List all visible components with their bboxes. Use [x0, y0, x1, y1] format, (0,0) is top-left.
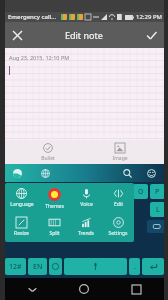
button[interactable]: Split — [38, 217, 70, 237]
button[interactable]: . — [129, 258, 140, 275]
staticText: Themes — [45, 203, 64, 210]
button[interactable]: Home — [67, 278, 101, 300]
button[interactable]: 12# — [5, 258, 26, 275]
staticText: Edit note — [65, 29, 103, 41]
staticText: Bullet — [41, 155, 55, 162]
staticText: Image — [112, 155, 128, 162]
button[interactable]: Image — [103, 142, 137, 163]
button[interactable]: Settings — [102, 217, 134, 237]
button[interactable]: Trends — [70, 217, 102, 237]
staticText: L — [156, 205, 160, 215]
staticText: EN — [33, 262, 43, 272]
staticText: 12# — [9, 262, 22, 272]
button[interactable]: Keyboard menu — [10, 166, 24, 180]
button[interactable]: Themes — [38, 188, 70, 210]
button[interactable]: Emoji — [144, 166, 158, 180]
button[interactable]: Voice — [70, 188, 102, 208]
staticText: 12:29 PM — [136, 13, 162, 21]
staticText: Language — [10, 201, 34, 208]
staticText: Emergency call... — [8, 13, 57, 21]
button[interactable]: Language — [5, 188, 38, 208]
button[interactable]: P — [150, 184, 165, 199]
staticText: P — [155, 187, 160, 197]
button[interactable]: Backspace — [147, 220, 165, 233]
staticText: . — [134, 262, 136, 272]
button[interactable]: Close — [6, 24, 28, 46]
staticText: Settings — [108, 230, 128, 237]
staticText: O — [138, 187, 144, 197]
button[interactable]: Bullet — [31, 142, 65, 163]
staticText: Resize — [14, 230, 29, 237]
button[interactable]: Hide keyboard — [15, 278, 49, 300]
staticText: Aug 23, 2015, 12:10 PM — [9, 54, 70, 61]
button[interactable]: Search — [120, 166, 134, 180]
button[interactable]: O — [133, 184, 148, 199]
staticText: Split — [49, 230, 60, 237]
button[interactable]: Emoji key — [49, 258, 62, 275]
button[interactable]: Edit — [102, 188, 134, 208]
button[interactable]: L — [150, 202, 165, 217]
button[interactable]: EN — [28, 258, 47, 275]
staticText: Voice — [80, 201, 93, 208]
staticText: Trends — [78, 230, 94, 237]
button[interactable]: Recents — [119, 278, 153, 300]
button[interactable]: Language — [38, 166, 52, 180]
button[interactable]: Enter — [142, 258, 164, 275]
button[interactable]: Save — [140, 24, 162, 46]
button[interactable]: Space — [64, 258, 127, 275]
button[interactable]: Resize — [5, 217, 38, 237]
staticText: Edit — [114, 201, 123, 208]
